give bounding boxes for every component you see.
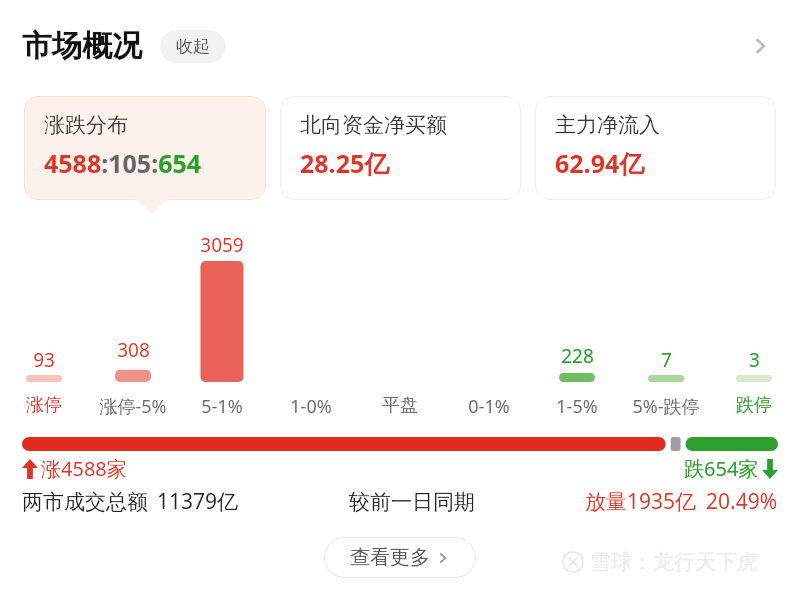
button[interactable]: 查看更多 bbox=[324, 537, 476, 578]
staticText: 5%-跌停 bbox=[632, 394, 700, 419]
staticText: 北向资金净买额 bbox=[300, 112, 447, 138]
button[interactable]: 北向资金净买额 bbox=[280, 96, 521, 200]
staticText: 跌停 bbox=[736, 394, 772, 417]
staticText: 7 bbox=[661, 347, 672, 373]
staticText: 收起 bbox=[176, 36, 210, 57]
staticText: 20.49% bbox=[706, 487, 778, 516]
staticText: 主力净流入 bbox=[555, 112, 660, 138]
staticText: 较前一日同期 bbox=[349, 489, 475, 515]
staticText: 放量 bbox=[585, 489, 627, 515]
staticText: 93 bbox=[33, 347, 55, 373]
staticText: 市场概况 bbox=[22, 27, 142, 65]
staticText: 平盘 bbox=[382, 394, 418, 417]
staticText: 雪球：龙行天下虎 bbox=[590, 549, 758, 575]
staticText: 涨跌分布 bbox=[44, 112, 128, 138]
staticText: 62.94亿 bbox=[555, 146, 645, 180]
staticText: 跌654家 bbox=[684, 455, 759, 482]
staticText: 查看更多 bbox=[350, 545, 430, 570]
staticText: 11379亿 bbox=[157, 487, 239, 516]
staticText: 涨停-5% bbox=[99, 394, 167, 419]
staticText: 3059 bbox=[200, 232, 244, 258]
button[interactable]: 收起 bbox=[160, 30, 226, 63]
staticText: 28.25亿 bbox=[300, 146, 390, 180]
staticText: 4588:105:654 bbox=[44, 146, 202, 180]
staticText: 两市成交总额 bbox=[22, 489, 148, 515]
staticText: 1-5% bbox=[556, 394, 598, 419]
staticText: 3 bbox=[749, 347, 760, 373]
staticText: 涨停 bbox=[26, 394, 62, 417]
staticText: 涨4588家 bbox=[41, 455, 127, 482]
button[interactable]: More bbox=[738, 24, 782, 68]
staticText: 5-1% bbox=[201, 394, 243, 419]
staticText: 308 bbox=[117, 337, 150, 363]
button[interactable]: 涨跌分布 bbox=[24, 96, 266, 200]
button[interactable]: 主力净流入 bbox=[535, 96, 776, 200]
staticText: 0-1% bbox=[468, 394, 510, 419]
staticText: 228 bbox=[561, 343, 594, 369]
staticText: 1935亿 bbox=[627, 487, 697, 516]
staticText: 1-0% bbox=[290, 394, 332, 419]
